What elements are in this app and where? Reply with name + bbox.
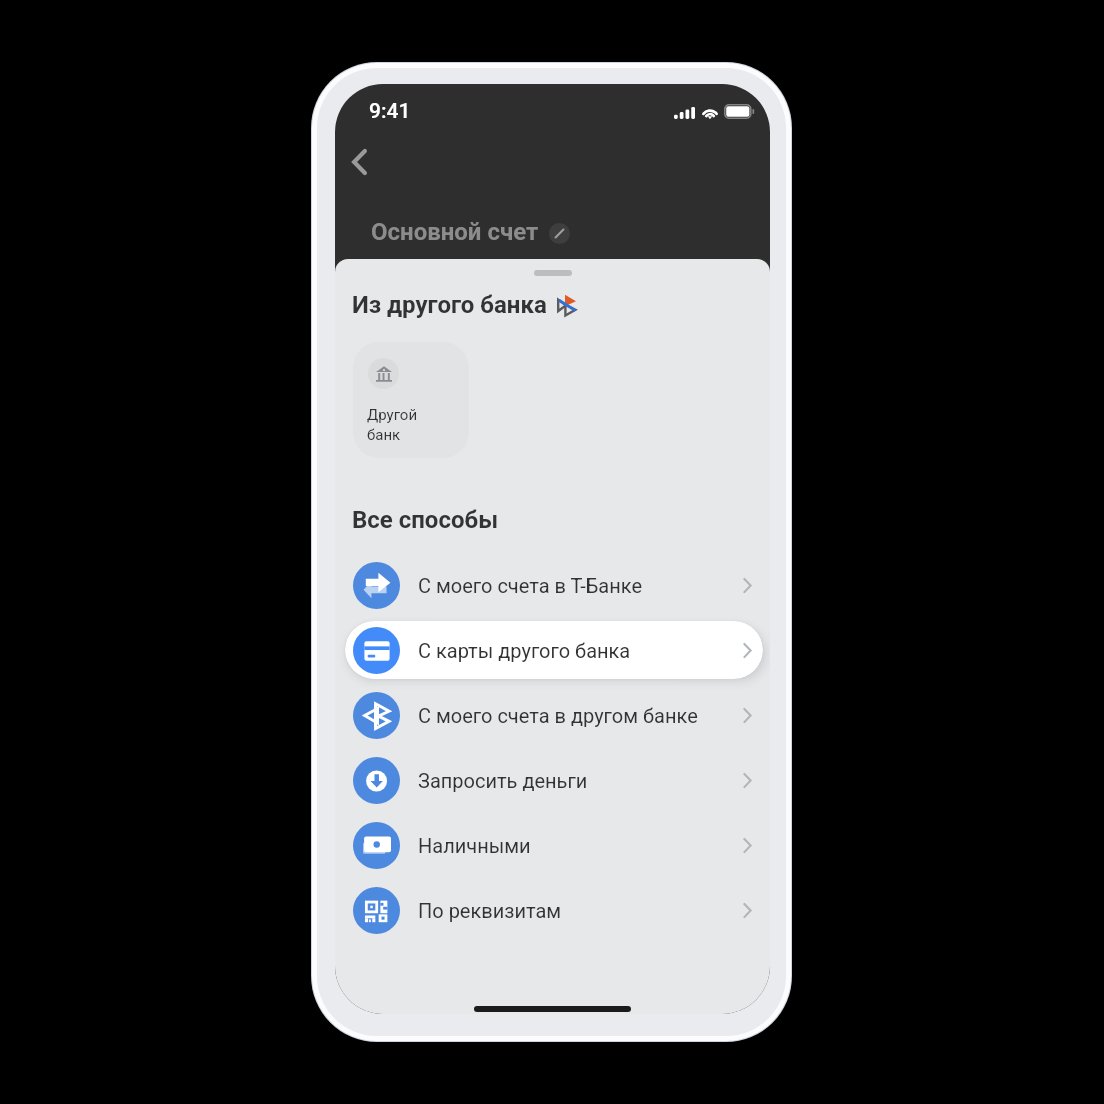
staticText: Из другого банка bbox=[352, 291, 547, 319]
button[interactable]: С карты другого банка bbox=[345, 621, 763, 679]
button[interactable]: Back bbox=[337, 138, 385, 186]
staticText: Все способы bbox=[352, 506, 499, 534]
button[interactable]: Наличными bbox=[345, 816, 763, 874]
staticText: Наличными bbox=[418, 834, 531, 857]
button[interactable]: Запросить деньги bbox=[345, 751, 763, 809]
staticText: Основной счет bbox=[371, 218, 539, 246]
button[interactable]: По реквизитам bbox=[345, 881, 763, 939]
button[interactable]: С моего счета в Т-Банке bbox=[345, 556, 763, 614]
staticText: С карты другого банка bbox=[418, 639, 631, 662]
staticText: С моего счета в Т-Банке bbox=[418, 574, 643, 597]
staticText: 9:41 bbox=[369, 99, 411, 124]
button[interactable]: С моего счета в другом банке bbox=[345, 686, 763, 744]
staticText: С моего счета в другом банке bbox=[418, 704, 698, 727]
button[interactable]: Другой банк bbox=[353, 342, 469, 458]
staticText: Другой банк bbox=[367, 406, 418, 444]
staticText: Запросить деньги bbox=[418, 769, 588, 792]
staticText: По реквизитам bbox=[418, 899, 562, 922]
